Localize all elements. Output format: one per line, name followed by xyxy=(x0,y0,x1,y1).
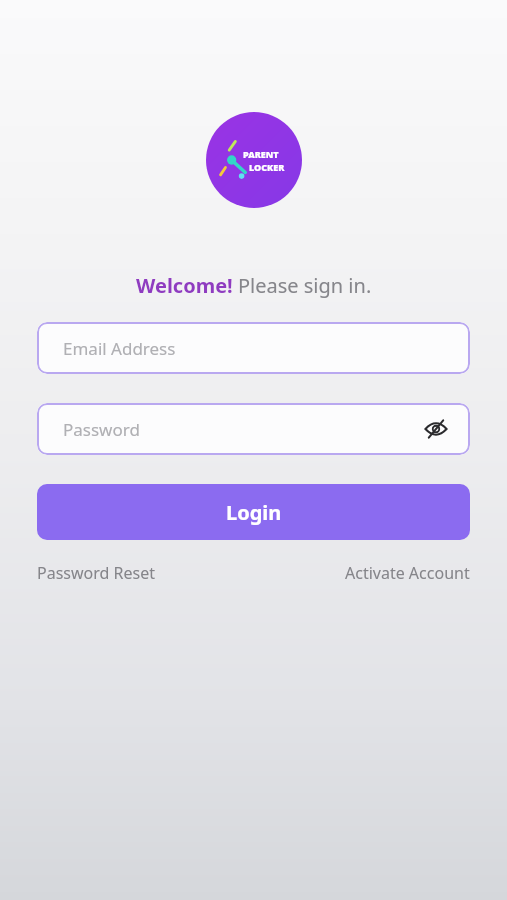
button[interactable]: Activate Account xyxy=(345,562,470,584)
staticText: Login xyxy=(226,499,282,526)
staticText: Email Address xyxy=(63,337,176,360)
staticText: LOCKER xyxy=(249,161,285,173)
staticText: Activate Account xyxy=(345,562,470,584)
button[interactable]: Login xyxy=(37,484,470,540)
button[interactable]: Email Address xyxy=(37,322,470,374)
button[interactable]: Password Reset xyxy=(37,562,155,584)
button[interactable]: Show password xyxy=(422,415,450,443)
staticText: Password xyxy=(63,418,140,441)
staticText: PARENT xyxy=(243,148,279,160)
staticText: Welcome! Please sign in. xyxy=(136,272,372,299)
staticText: Password Reset xyxy=(37,562,155,584)
button[interactable]: Password xyxy=(37,403,470,455)
